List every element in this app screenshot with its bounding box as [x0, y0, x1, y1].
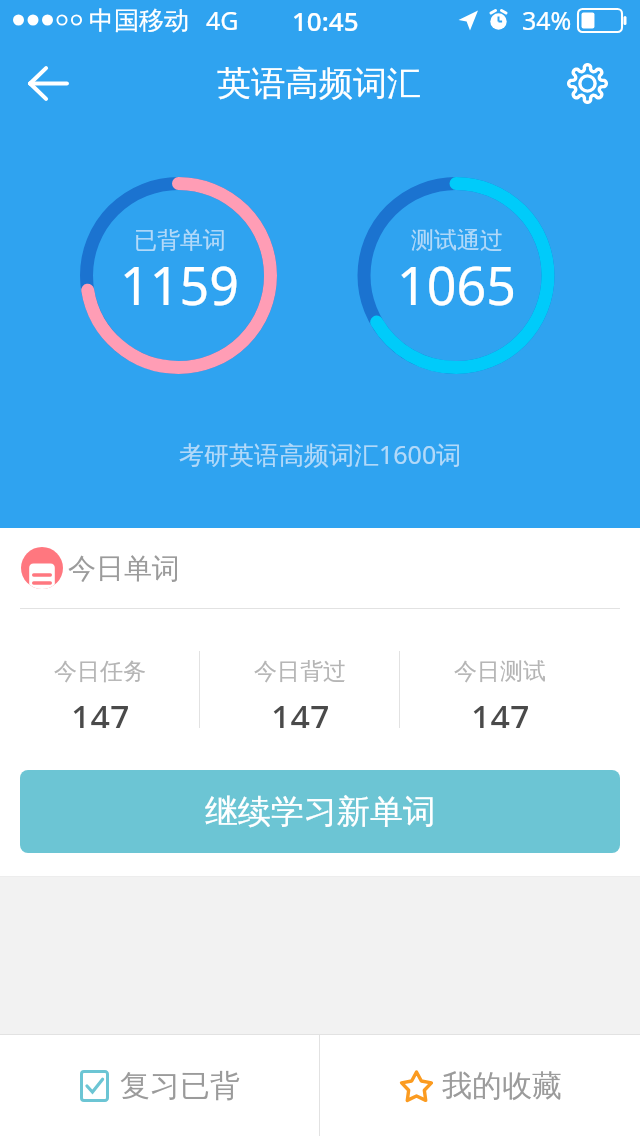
staticText: 继续学习新单词	[205, 791, 436, 833]
staticText: 4G	[206, 3, 239, 37]
staticText: 147	[271, 695, 330, 728]
button[interactable]: 我的收藏	[320, 1035, 640, 1136]
staticText: 今日背过	[254, 657, 346, 686]
staticText: 我的收藏	[442, 1067, 562, 1105]
staticText: 已背单词	[134, 226, 226, 255]
staticText: 考研英语高频词汇1600词	[179, 437, 462, 471]
staticText: 147	[471, 695, 530, 728]
staticText: 中国移动	[89, 5, 189, 36]
staticText: 147	[71, 695, 130, 728]
staticText: 1065	[397, 249, 516, 320]
staticText: 今日测试	[454, 657, 546, 686]
staticText: 测试通过	[411, 226, 503, 255]
staticText: 34%	[522, 3, 572, 37]
button[interactable]: 复习已背	[0, 1035, 319, 1136]
staticText: 英语高频词汇	[217, 62, 421, 105]
button[interactable]: Settings	[557, 53, 618, 114]
button[interactable]: 继续学习新单词	[20, 770, 620, 853]
staticText: 1159	[120, 249, 239, 320]
staticText: 今日任务	[54, 657, 146, 686]
staticText: 10:45	[292, 3, 359, 38]
staticText: 复习已背	[120, 1067, 240, 1105]
button[interactable]: 今日单词	[0, 528, 640, 608]
staticText: 今日单词	[68, 551, 180, 586]
button[interactable]: Back	[18, 53, 79, 114]
